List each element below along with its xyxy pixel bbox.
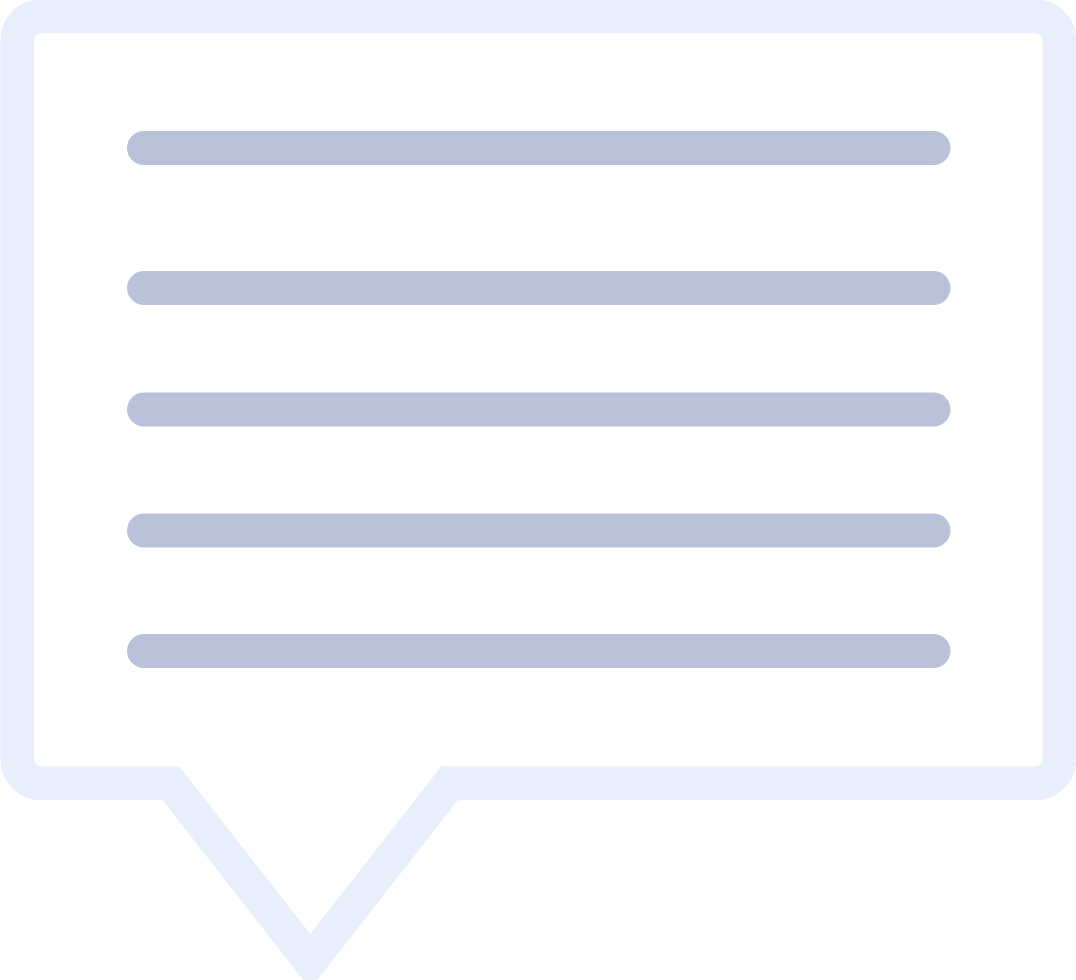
button[interactable]: Messages: [0, 0, 1076, 980]
